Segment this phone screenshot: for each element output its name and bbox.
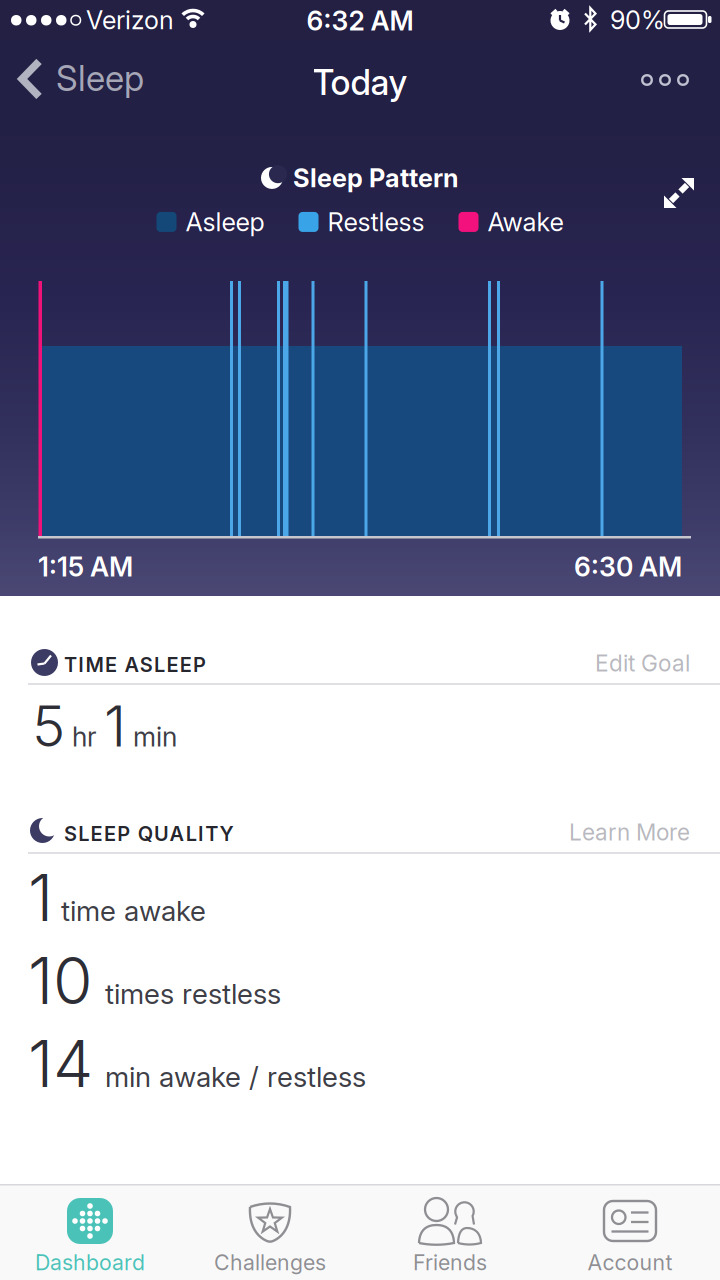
button[interactable]: Expand chart: [663, 177, 695, 209]
button[interactable]: Sleep: [18, 58, 144, 99]
staticText: Sleep: [56, 58, 144, 99]
staticText: Dashboard: [35, 1250, 145, 1275]
staticText: 90%: [610, 5, 665, 35]
staticText: Asleep: [185, 207, 264, 237]
button[interactable]: More options: [630, 60, 700, 100]
staticText: Learn More: [569, 819, 690, 846]
staticText: 6:30 AM: [574, 551, 682, 582]
staticText: times restless: [105, 977, 281, 1010]
staticText: 1: [104, 693, 126, 759]
staticText: Awake: [487, 207, 563, 237]
button[interactable]: Friends: [360, 1186, 540, 1280]
staticText: 10: [28, 943, 93, 1018]
button[interactable]: Account: [540, 1186, 720, 1280]
button[interactable]: Edit Goal: [595, 644, 720, 683]
staticText: TIME ASLEEP: [64, 653, 206, 677]
staticText: hr: [72, 721, 97, 752]
staticText: Today: [312, 62, 407, 103]
button[interactable]: Challenges: [180, 1186, 360, 1280]
staticText: min: [133, 721, 177, 752]
staticText: Restless: [327, 207, 424, 237]
staticText: 6:32 AM: [306, 5, 413, 36]
staticText: 1:15 AM: [38, 551, 133, 582]
staticText: 1: [28, 860, 53, 935]
staticText: SLEEP QUALITY: [64, 822, 234, 846]
button[interactable]: Dashboard: [0, 1186, 180, 1280]
staticText: Verizon: [86, 5, 174, 35]
staticText: Edit Goal: [595, 650, 690, 677]
staticText: time awake: [61, 894, 206, 927]
staticText: Account: [587, 1250, 672, 1275]
staticText: min awake / restless: [105, 1060, 366, 1093]
staticText: Sleep Pattern: [293, 163, 459, 193]
staticText: Friends: [413, 1250, 487, 1275]
staticText: 5: [32, 693, 65, 759]
staticText: Challenges: [214, 1250, 326, 1275]
staticText: 14: [28, 1026, 93, 1101]
button[interactable]: Learn More: [569, 813, 720, 852]
